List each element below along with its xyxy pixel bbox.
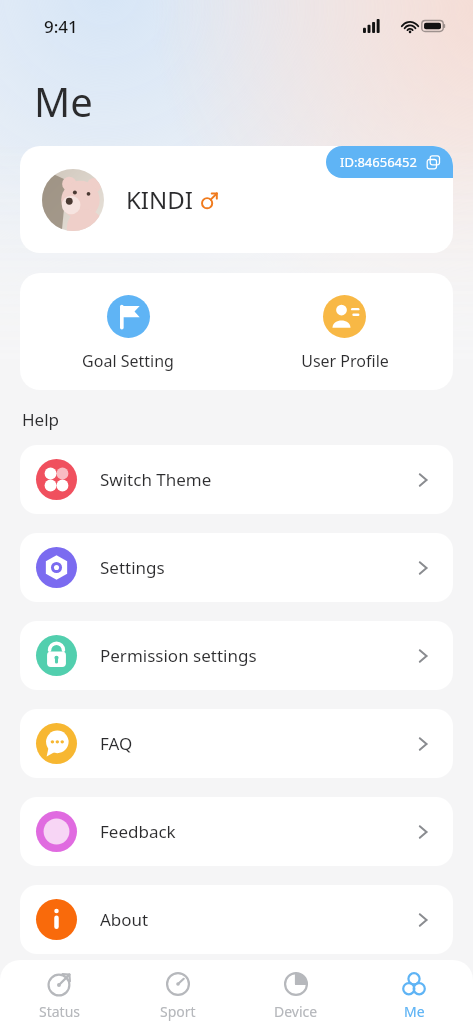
staticText: Device bbox=[274, 1002, 318, 1021]
staticText: Switch Theme bbox=[100, 468, 415, 491]
staticText: Permission settings bbox=[100, 644, 415, 667]
other: Avatar bbox=[42, 169, 104, 231]
button[interactable]: Device bbox=[237, 963, 355, 1021]
button[interactable]: Settings bbox=[20, 533, 453, 602]
button[interactable]: About bbox=[20, 885, 453, 954]
staticText: Status bbox=[39, 1002, 81, 1021]
button[interactable]: ID:84656452 bbox=[20, 146, 453, 253]
button[interactable]: Permission settings bbox=[20, 621, 453, 690]
staticText: Settings bbox=[100, 556, 415, 579]
button[interactable]: Switch Theme bbox=[20, 445, 453, 514]
button[interactable]: Me bbox=[355, 963, 473, 1021]
staticText: 9:41 bbox=[44, 15, 78, 38]
staticText: Sport bbox=[160, 1002, 196, 1021]
staticText: ID:84656452 bbox=[340, 153, 417, 171]
staticText: About bbox=[100, 908, 415, 931]
staticText: User Profile bbox=[301, 350, 389, 372]
button[interactable]: ID:84656452 bbox=[326, 146, 453, 178]
staticText: FAQ bbox=[100, 732, 415, 755]
staticText: Goal Setting bbox=[82, 350, 174, 372]
button[interactable]: Feedback bbox=[20, 797, 453, 866]
staticText: KINDI bbox=[126, 183, 193, 216]
button[interactable]: Goal Setting bbox=[20, 273, 236, 372]
button[interactable]: User Profile bbox=[236, 273, 453, 372]
button[interactable]: Status bbox=[0, 963, 119, 1021]
staticText: Help bbox=[22, 408, 60, 431]
button[interactable]: FAQ bbox=[20, 709, 453, 778]
staticText: Feedback bbox=[100, 820, 415, 843]
button[interactable]: Sport bbox=[119, 963, 237, 1021]
staticText: Me bbox=[404, 1002, 425, 1021]
staticText: Me bbox=[34, 74, 93, 128]
